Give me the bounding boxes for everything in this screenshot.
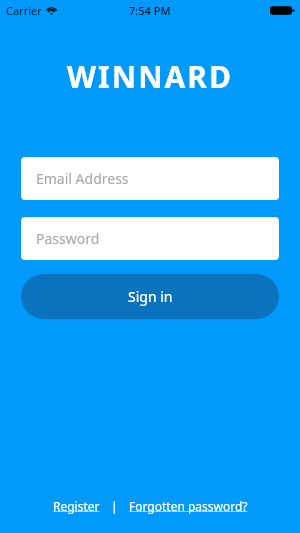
staticText: Forgotten password? <box>129 498 248 514</box>
button[interactable]: Email Address <box>21 157 279 200</box>
button[interactable]: Sign in <box>21 274 279 319</box>
staticText: Email Address <box>36 169 129 188</box>
staticText: WINNARD <box>0 56 300 97</box>
button[interactable]: Register <box>51 495 102 517</box>
staticText: 7:54 PM <box>129 3 171 18</box>
staticText: Register <box>53 498 100 514</box>
staticText: Carrier <box>6 3 42 18</box>
staticText: Sign in <box>128 287 173 306</box>
button[interactable]: Forgotten password? <box>127 495 250 517</box>
button[interactable]: Password <box>21 217 279 260</box>
staticText: | <box>111 498 118 514</box>
staticText: Password <box>36 229 100 248</box>
